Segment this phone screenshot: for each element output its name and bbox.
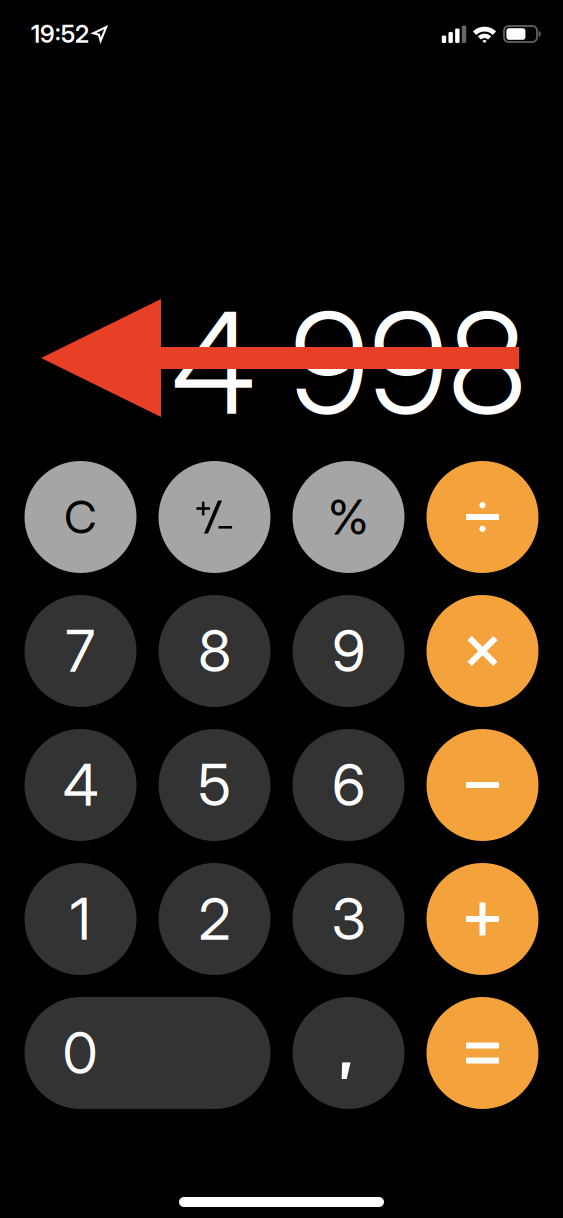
button[interactable]: 3 [292, 863, 404, 975]
button[interactable]: 1 [24, 863, 136, 975]
staticText: 19:52 [31, 19, 89, 48]
button[interactable]: 6 [292, 729, 404, 841]
button[interactable]: 4 [24, 729, 136, 841]
staticText: 7 [65, 616, 95, 686]
staticText: 6 [332, 750, 365, 820]
button[interactable]: Multiply [426, 595, 538, 707]
button[interactable]: Decimal separator [292, 997, 404, 1109]
button[interactable]: 9 [292, 595, 404, 707]
staticText: 0 [62, 1018, 97, 1088]
button[interactable]: Equals [426, 997, 538, 1109]
button[interactable]: Plus [426, 863, 538, 975]
staticText: 5 [198, 750, 231, 820]
staticText: 2 [198, 884, 230, 954]
staticText: 8 [198, 616, 231, 686]
button[interactable]: 2 [158, 863, 270, 975]
staticText: 1 [70, 884, 91, 954]
button[interactable]: Clear [24, 461, 136, 573]
button[interactable]: Percent [292, 461, 404, 573]
button[interactable]: Divide [426, 461, 538, 573]
button[interactable]: Minus [426, 729, 538, 841]
staticText: C [64, 490, 97, 544]
staticText: 9 [332, 616, 365, 686]
button[interactable]: 8 [158, 595, 270, 707]
staticText: % [328, 488, 369, 546]
staticText: 3 [331, 884, 365, 954]
staticText: 4 [63, 750, 98, 820]
staticText: 4 998 [171, 278, 527, 447]
button[interactable]: 7 [24, 595, 136, 707]
button[interactable]: Plus minus [158, 461, 270, 573]
button[interactable]: 5 [158, 729, 270, 841]
button[interactable]: 0 [24, 997, 270, 1109]
